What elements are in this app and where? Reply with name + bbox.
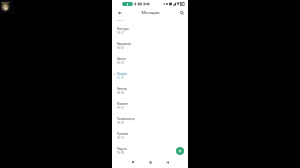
staticText: 00:32: [117, 76, 125, 80]
button[interactable]: Back: [116, 9, 124, 17]
button[interactable]: Капель: [112, 84, 188, 99]
staticText: 00:30: [117, 46, 125, 50]
staticText: Момент: [117, 102, 129, 106]
button[interactable]: Радуга: [112, 144, 188, 159]
staticText: 00:31: [117, 136, 125, 140]
button[interactable]: Add ringtone: [176, 147, 184, 155]
staticText: 00:30: [117, 91, 125, 95]
button[interactable]: Тихий вечер: [112, 114, 188, 129]
staticText: 00:30: [117, 121, 125, 125]
staticText: Капель: [117, 87, 128, 91]
button[interactable]: Капля: [112, 54, 188, 69]
staticText: Радуга: [117, 147, 127, 151]
staticText: Вентура: [117, 27, 129, 31]
button[interactable]: Карамель: [112, 39, 188, 54]
button[interactable]: Лагуна: [112, 69, 188, 84]
button[interactable]: Вентура: [112, 24, 188, 39]
staticText: Прилив: [117, 132, 128, 136]
button[interactable]: Момент: [112, 99, 188, 114]
staticText: 00:30: [117, 151, 125, 155]
staticText: 00:31: [117, 106, 125, 110]
staticText: 00:31: [117, 61, 125, 65]
button[interactable]: Recent apps: [129, 158, 137, 166]
staticText: Тихий вечер: [117, 117, 135, 121]
staticText: Мелодии: [141, 10, 160, 15]
button[interactable]: Прилив: [112, 129, 188, 144]
staticText: Карамель: [117, 42, 132, 46]
staticText: Лагуна: [117, 72, 127, 76]
staticText: 00:31: [117, 18, 124, 21]
staticText: Капля: [117, 57, 126, 61]
button[interactable]: Home: [146, 158, 154, 166]
button[interactable]: Search: [178, 9, 186, 17]
staticText: 00:31: [117, 31, 125, 35]
button[interactable]: Back: [163, 158, 171, 166]
